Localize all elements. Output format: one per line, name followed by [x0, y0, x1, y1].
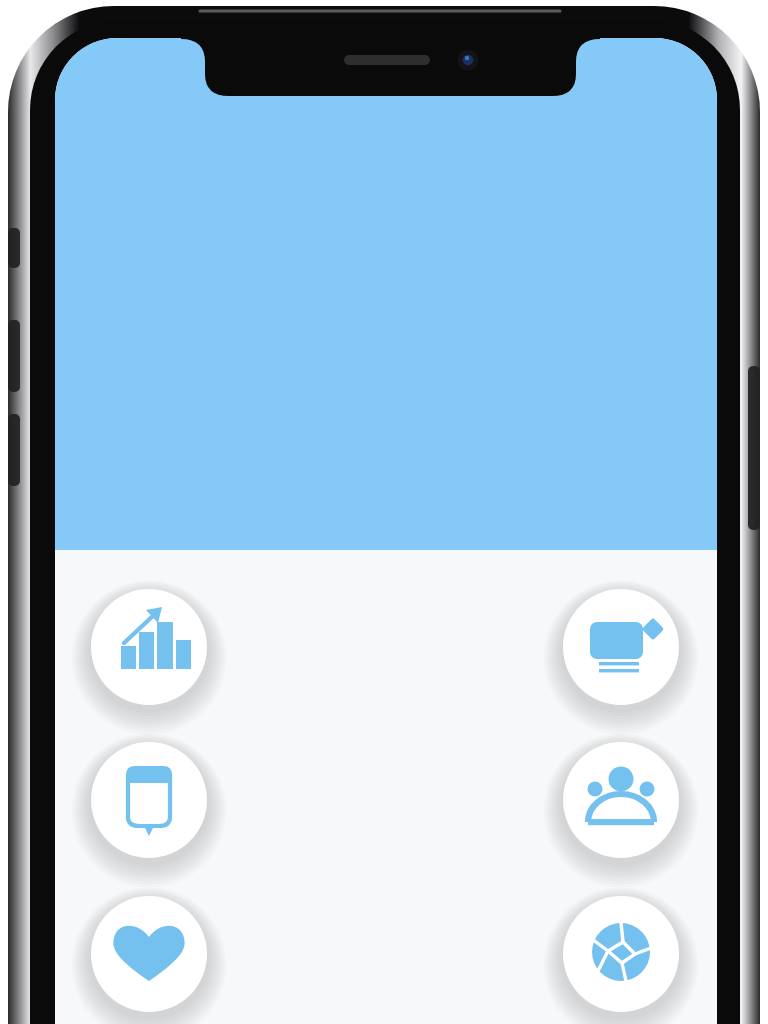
button[interactable]: Media — [563, 589, 679, 705]
button[interactable]: Analytics — [91, 589, 207, 705]
button[interactable]: Global — [563, 896, 679, 1012]
button[interactable]: Infusion — [91, 742, 207, 858]
button[interactable]: Patients — [563, 742, 679, 858]
button[interactable]: Favorites — [91, 896, 207, 1012]
